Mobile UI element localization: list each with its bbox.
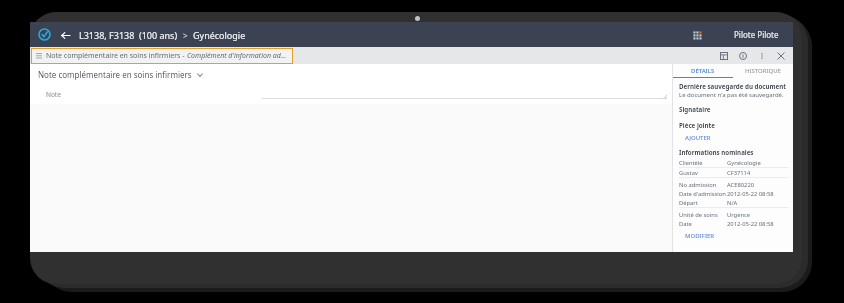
button[interactable]: Note complémentaire en soins infirmiers [38,69,203,80]
button[interactable]: MODIFIER [685,232,715,240]
staticText: Informations nominales [679,148,754,156]
staticText: Clientèle [679,159,703,167]
staticText: CF37114 [727,169,751,177]
button[interactable]: Applications [689,27,705,43]
staticText: DÉTAILS [691,67,715,75]
button[interactable]: Information [736,49,749,62]
staticText: 2012-05-22 08:58 [727,190,774,198]
staticText: Gynécologie [727,159,761,167]
button[interactable]: Pilote Pilote [731,29,782,40]
button[interactable]: Note complémentaire en soins infirmiers … [31,48,293,64]
staticText: Gynécologie [193,29,246,41]
button[interactable]: Table view [717,49,730,62]
staticText: Urgence [727,211,751,219]
staticText: Complément d'information admission [187,51,288,61]
staticText: Note [46,90,61,99]
staticText: Le document n'a pas été sauvegardé. [679,91,784,99]
staticText: > [183,30,188,41]
staticText: Note complémentaire en soins infirmiers … [46,51,187,61]
staticText: 2012-05-22 08:58 [727,220,774,228]
staticText: Date [679,220,692,228]
staticText: Départ [679,199,698,207]
button[interactable]: Logo [37,27,52,42]
staticText: ACE80220 [727,181,755,189]
staticText: HISTORIQUE [745,67,781,75]
staticText: Date d'admission [679,190,726,198]
button[interactable]: DÉTAILS [673,64,733,78]
staticText: Signataire [679,105,711,113]
staticText: N/A [727,199,738,207]
staticText: No admission [679,181,717,189]
button[interactable]: Close [774,49,787,62]
staticText: L3138, F3138 (100 ans) [79,29,178,41]
staticText: Note complémentaire en soins infirmiers [38,69,192,80]
button[interactable] [262,87,667,99]
staticText: Pilote Pilote [734,29,779,40]
staticText: Gustav [679,169,698,177]
button[interactable]: Back [58,28,72,42]
button[interactable]: AJOUTER [685,134,711,142]
button[interactable]: More options [755,49,768,62]
staticText: AJOUTER [685,134,711,142]
staticText: Unité de soins [679,211,718,219]
staticText: Dernière sauvegarde du document [679,82,786,90]
staticText: MODIFIER [685,232,715,240]
staticText: Pièce jointe [679,121,715,129]
button[interactable]: HISTORIQUE [733,64,793,78]
